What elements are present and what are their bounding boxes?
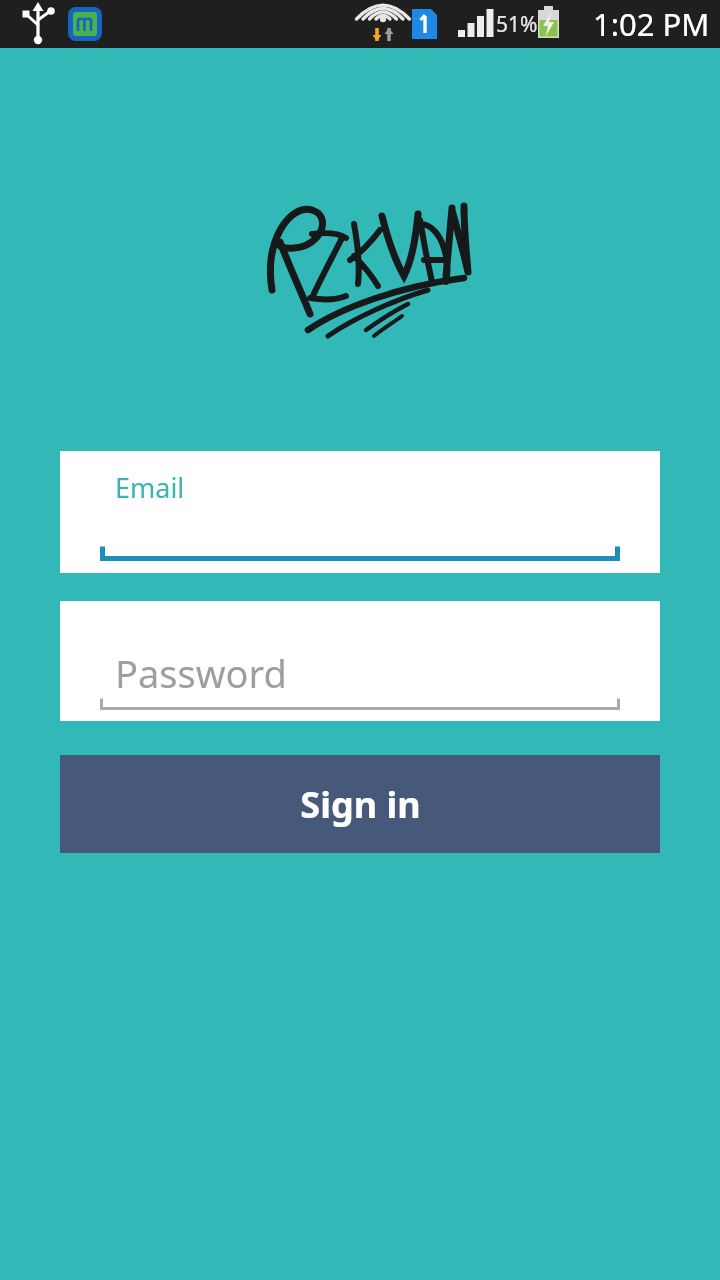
staticText: 1:02 PM (593, 3, 710, 45)
button[interactable]: Sign in (60, 755, 660, 853)
staticText: Sign in (300, 780, 421, 829)
staticText: 51% (496, 10, 538, 39)
staticText: Email (115, 469, 185, 506)
button[interactable]: Password (60, 601, 660, 721)
button[interactable]: Email (60, 451, 660, 573)
staticText: Password (115, 647, 287, 699)
